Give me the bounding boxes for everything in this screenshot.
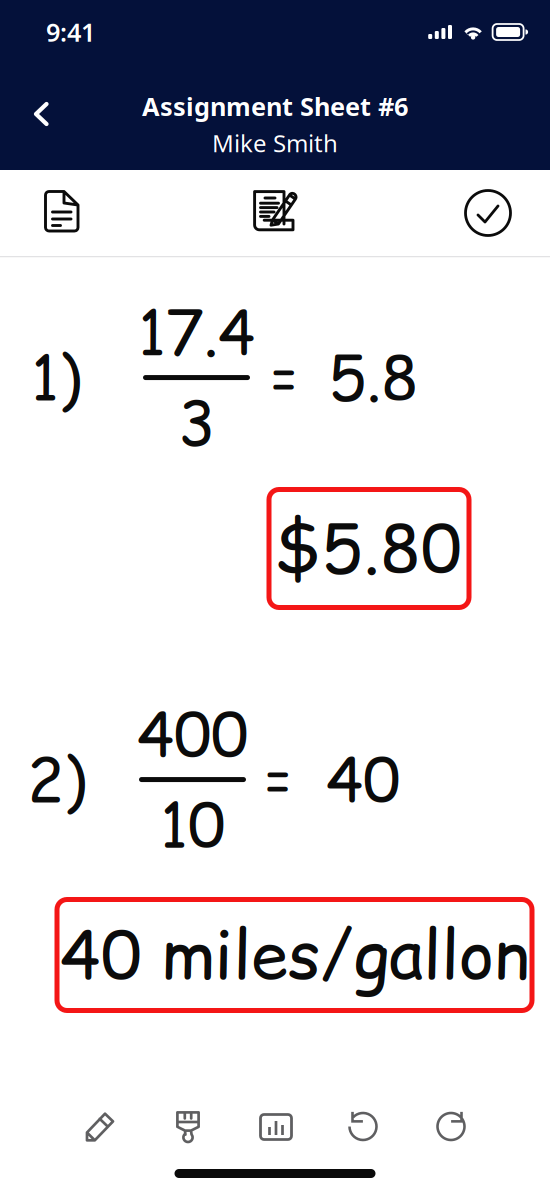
staticText: =	[265, 742, 292, 817]
staticText: 17.4	[138, 289, 255, 375]
staticText: 5.8	[329, 335, 418, 420]
staticText: 2)	[27, 737, 86, 822]
staticText: 400	[137, 691, 248, 777]
button[interactable]: Mark complete	[428, 170, 548, 256]
staticText: 10	[160, 782, 225, 868]
staticText: 40 miles/gallon	[60, 908, 529, 1001]
staticText: =	[271, 340, 298, 415]
button[interactable]: Highlighter	[144, 1099, 232, 1155]
button[interactable]: Draw	[56, 1099, 144, 1155]
staticText: 1)	[31, 335, 81, 420]
staticText: 9:41	[46, 15, 95, 49]
button[interactable]: Document	[2, 170, 122, 256]
staticText: Assignment Sheet #6	[142, 89, 408, 123]
button[interactable]: Back	[7, 83, 75, 145]
button[interactable]: Insert chart	[232, 1099, 320, 1155]
staticText: $5.80	[276, 502, 462, 595]
staticText: 3	[178, 380, 215, 466]
button[interactable]: Redo	[408, 1099, 496, 1155]
staticText: Mike Smith	[212, 127, 338, 159]
button[interactable]: Undo	[320, 1099, 408, 1155]
button[interactable]: Sign	[215, 170, 335, 256]
staticText: 40	[326, 737, 400, 822]
